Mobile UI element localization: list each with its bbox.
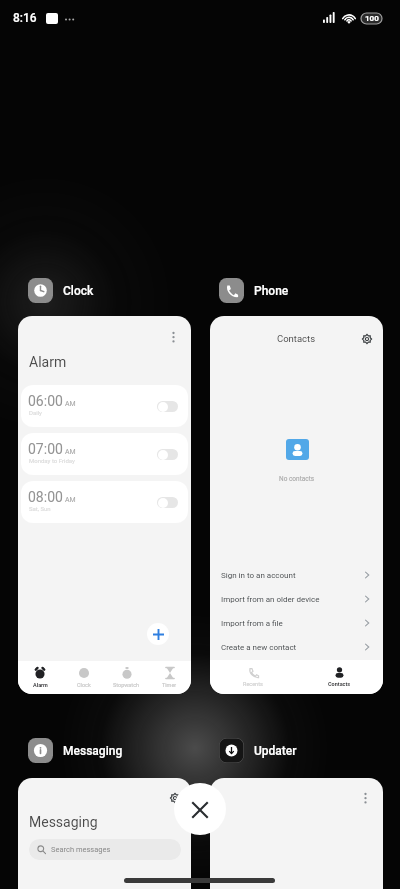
- button[interactable]: Settings: [361, 333, 373, 345]
- button[interactable]: More options: [363, 792, 368, 804]
- staticText: AM: [65, 448, 76, 456]
- button[interactable]: 06:00: [21, 385, 188, 427]
- button[interactable]: Import from a file: [210, 611, 383, 635]
- staticText: Alarm: [29, 354, 67, 370]
- button[interactable]: Clock: [62, 661, 105, 694]
- staticText: Create a new contact: [221, 643, 297, 652]
- button[interactable]: Create a new contact: [210, 635, 383, 659]
- staticText: 08:00: [28, 489, 63, 505]
- staticText: 8:16: [13, 11, 37, 25]
- staticText: 100: [365, 14, 379, 23]
- staticText: Timer: [162, 682, 177, 688]
- button[interactable]: Toggle alarm: [157, 401, 178, 412]
- button[interactable]: Settings: [169, 792, 181, 804]
- button[interactable]: 08:00: [21, 481, 188, 523]
- staticText: AM: [65, 496, 76, 504]
- staticText: 07:00: [28, 441, 63, 457]
- button[interactable]: Search messages: [29, 839, 181, 860]
- button[interactable]: Messaging: [28, 738, 123, 763]
- staticText: AM: [65, 400, 76, 408]
- button[interactable]: Sign in to an account: [210, 563, 383, 587]
- staticText: Contacts: [277, 333, 316, 344]
- button[interactable]: Toggle alarm: [157, 497, 178, 508]
- button[interactable]: Add alarm: [147, 623, 169, 645]
- staticText: Updater: [254, 744, 297, 758]
- staticText: Search messages: [51, 845, 111, 854]
- staticText: Import from an older device: [221, 595, 320, 604]
- button[interactable]: Timer: [148, 661, 191, 694]
- button[interactable]: Contacts: [210, 316, 383, 694]
- button[interactable]: Clear all: [174, 783, 226, 835]
- staticText: Sat, Sun: [29, 505, 51, 512]
- button[interactable]: More options: [18, 316, 191, 694]
- button[interactable]: 07:00: [21, 433, 188, 475]
- staticText: 06:00: [28, 393, 63, 409]
- button[interactable]: Recents: [210, 660, 296, 694]
- staticText: Clock: [77, 682, 91, 688]
- staticText: Alarm: [33, 682, 48, 688]
- button[interactable]: Stopwatch: [105, 661, 148, 694]
- staticText: Sign in to an account: [221, 571, 296, 580]
- button[interactable]: Updater: [219, 738, 297, 763]
- button[interactable]: More options: [171, 331, 176, 343]
- staticText: Clock: [63, 284, 94, 298]
- button[interactable]: Import from an older device: [210, 587, 383, 611]
- button[interactable]: Toggle alarm: [157, 449, 178, 460]
- button[interactable]: Settings: [18, 778, 191, 889]
- staticText: Phone: [254, 284, 289, 298]
- staticText: Import from a file: [221, 619, 283, 628]
- button[interactable]: Clock: [28, 278, 94, 303]
- button[interactable]: Contacts: [296, 660, 383, 694]
- button[interactable]: More options: [210, 778, 383, 889]
- staticText: No contacts: [279, 475, 315, 483]
- button[interactable]: Phone: [219, 278, 289, 303]
- staticText: Messaging: [63, 744, 123, 758]
- staticText: Recents: [243, 681, 263, 687]
- staticText: Messaging: [29, 814, 98, 830]
- staticText: Stopwatch: [113, 682, 140, 688]
- staticText: Monday to Friday: [29, 457, 75, 464]
- staticText: Daily: [29, 409, 42, 416]
- button[interactable]: Alarm: [18, 661, 62, 694]
- staticText: Contacts: [328, 681, 351, 687]
